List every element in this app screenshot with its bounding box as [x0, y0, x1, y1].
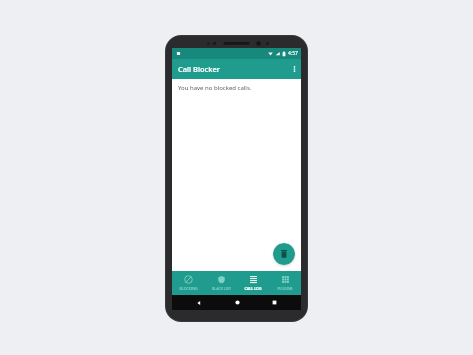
staticText: You have no blocked calls.	[178, 84, 252, 92]
button[interactable]: PLUGINS	[269, 271, 301, 295]
staticText: BLACK LIST	[212, 286, 231, 291]
button[interactable]: Back	[188, 295, 210, 310]
button[interactable]: BLOCKING	[172, 271, 205, 295]
staticText: PLUGINS	[277, 286, 293, 291]
button[interactable]: BLACK LIST	[205, 271, 237, 295]
button[interactable]: Home	[226, 295, 248, 310]
staticText: CALL LOG	[244, 286, 262, 291]
staticText: 4:57	[288, 50, 298, 57]
button[interactable]: Delete call log	[273, 243, 295, 265]
button[interactable]: Recent apps	[263, 295, 285, 310]
button[interactable]: More options	[287, 59, 301, 79]
staticText: BLOCKING	[179, 286, 198, 291]
button[interactable]: CALL LOG	[237, 271, 269, 295]
staticText: Call Blocker	[178, 64, 220, 74]
